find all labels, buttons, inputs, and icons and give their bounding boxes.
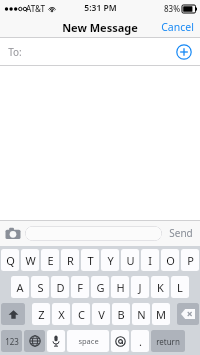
button[interactable]: R [61,249,79,271]
button[interactable] [25,226,162,241]
staticText: . [139,334,142,349]
staticText: U [126,253,135,268]
button[interactable]: L [171,276,189,298]
button[interactable]: X [52,303,70,325]
button[interactable]: D [51,276,69,298]
staticText: K [157,280,164,295]
staticText: E [47,253,54,268]
button[interactable]: U [121,249,139,271]
button[interactable]: E [41,249,59,271]
staticText: return [156,336,180,347]
staticText: V [98,307,105,322]
staticText: P [187,253,194,268]
button[interactable]: W [21,249,39,271]
button[interactable]: B [112,303,130,325]
button[interactable]: V [92,303,110,325]
button[interactable]: Change keyboard [24,330,45,352]
staticText: G [96,280,105,295]
staticText: S [37,280,44,295]
staticText: 5:31 PM [84,2,117,14]
staticText: X [58,307,65,322]
staticText: R [67,253,74,268]
button[interactable]: return [151,330,185,352]
button[interactable]: P [181,249,199,271]
button[interactable]: T [81,249,99,271]
button[interactable]: Add contact [176,44,192,60]
staticText: AT&T [26,3,45,14]
button[interactable]: G [91,276,109,298]
button[interactable]: I [141,249,159,271]
button[interactable]: O [161,249,179,271]
button[interactable]: Dictation [47,330,65,352]
staticText: M [156,307,166,322]
button[interactable]: F [71,276,89,298]
button[interactable]: M [152,303,170,325]
button[interactable]: Camera [5,226,21,240]
staticText: W [25,253,36,268]
staticText: Cancel [161,20,194,34]
staticText: B [117,307,125,322]
button[interactable]: Z [32,303,50,325]
staticText: J [138,280,142,295]
staticText: N [137,307,146,322]
staticText: A [16,280,24,295]
button[interactable]: Shift [1,303,25,325]
staticText: L [177,280,183,295]
button[interactable]: . [131,330,149,352]
staticText: Q [6,253,15,268]
staticText: 123 [5,336,19,347]
button[interactable]: H [111,276,129,298]
button[interactable]: space [67,330,109,352]
button[interactable]: Q [1,249,19,271]
staticText: C [78,307,85,322]
button[interactable]: J [131,276,149,298]
button[interactable]: Backspace [177,303,199,325]
staticText: Z [38,307,45,322]
staticText: D [56,280,65,295]
button[interactable]: Cancel [155,17,200,37]
staticText: To: [8,45,22,59]
button[interactable]: A [11,276,29,298]
button[interactable]: Send [167,223,195,243]
staticText: H [116,280,125,295]
staticText: T [87,253,94,268]
staticText: 83% [164,3,180,14]
staticText: New Message [62,20,138,35]
button[interactable]: K [151,276,169,298]
staticText: space [78,336,99,346]
button[interactable]: At sign [111,330,129,352]
button[interactable]: Y [101,249,119,271]
button[interactable]: N [132,303,150,325]
button[interactable]: C [72,303,90,325]
staticText: O [166,253,175,268]
button[interactable]: S [31,276,49,298]
button[interactable]: 123 [1,330,22,352]
staticText: I [148,253,152,268]
staticText: Y [107,253,114,268]
staticText: Send [169,226,193,240]
staticText: F [77,280,83,295]
